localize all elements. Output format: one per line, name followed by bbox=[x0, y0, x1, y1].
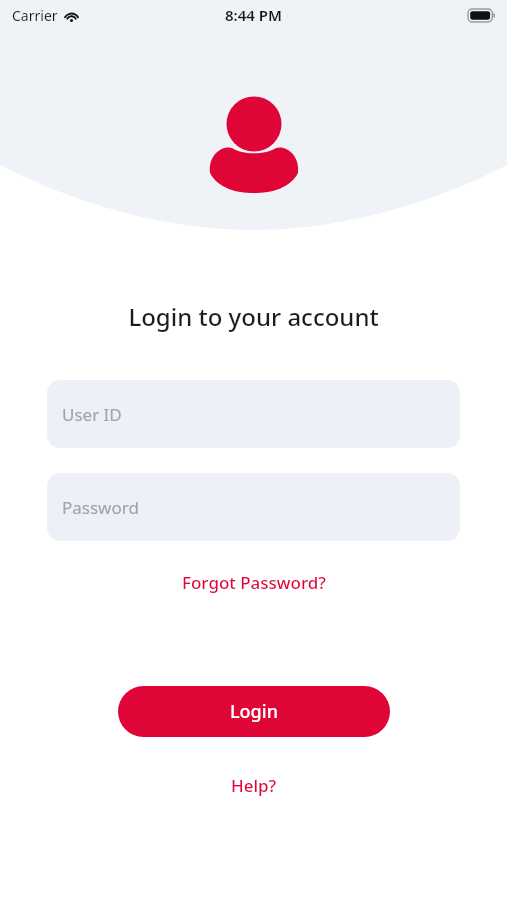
button[interactable]: User ID bbox=[47, 380, 460, 448]
staticText: 8:44 PM bbox=[225, 5, 282, 25]
button[interactable]: Password bbox=[47, 473, 460, 541]
button[interactable]: Help? bbox=[221, 771, 287, 800]
button[interactable]: Forgot Password? bbox=[174, 568, 334, 597]
staticText: Login to your account bbox=[128, 300, 379, 333]
staticText: User ID bbox=[62, 403, 122, 426]
staticText: Password bbox=[62, 496, 139, 519]
staticText: Carrier bbox=[12, 6, 58, 25]
staticText: Forgot Password? bbox=[182, 571, 326, 594]
staticText: Help? bbox=[231, 774, 277, 797]
button[interactable]: Login bbox=[118, 686, 390, 737]
staticText: Login bbox=[230, 699, 278, 724]
